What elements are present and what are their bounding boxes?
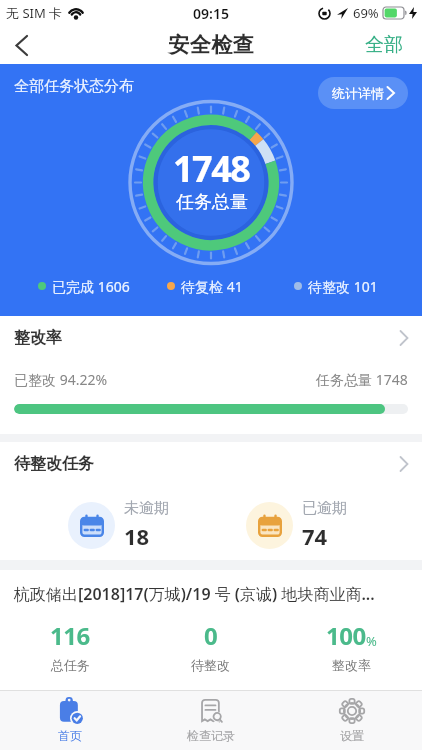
staticText: 待整改 101 <box>308 277 378 295</box>
staticText: 全部 <box>365 33 403 57</box>
staticText: 69% <box>353 4 379 22</box>
staticText: 已整改 94.22% <box>14 370 316 389</box>
button[interactable]: 整改率 <box>0 316 422 348</box>
button[interactable]: 已逾期 <box>246 499 347 551</box>
staticText: 设置 <box>340 728 364 743</box>
staticText: 已完成 1606 <box>52 277 130 295</box>
button[interactable]: 设置 <box>281 691 422 750</box>
button[interactable]: 检查记录 <box>140 691 281 750</box>
staticText: 待复检 41 <box>181 277 243 295</box>
button[interactable]: 待整改任务 <box>0 442 422 474</box>
staticText: 0 <box>204 619 218 652</box>
staticText: % <box>366 632 377 650</box>
staticText: 09:15 <box>193 4 229 23</box>
staticText: 任务总量 <box>176 191 248 214</box>
staticText: 首页 <box>58 728 82 743</box>
button[interactable]: 统计详情 <box>318 77 408 109</box>
staticText: 待整改 <box>191 657 230 673</box>
staticText: 100 <box>326 619 366 652</box>
staticText: 检查记录 <box>187 728 235 743</box>
staticText: 18 <box>124 521 150 551</box>
button[interactable]: 首页 <box>0 691 140 750</box>
staticText: 总任务 <box>51 657 90 673</box>
staticText: 安全检查 <box>168 32 254 58</box>
staticText: 杭政储出[2018]17(万城)/19 号 (京诚) 地块商业商... <box>14 583 375 605</box>
staticText: 1748 <box>173 144 250 193</box>
button[interactable]: 杭政储出[2018]17(万城)/19 号 (京诚) 地块商业商... <box>0 570 422 690</box>
staticText: 已逾期 <box>302 499 347 518</box>
button[interactable] <box>6 30 36 60</box>
staticText: 整改率 <box>14 328 400 348</box>
staticText: 待整改任务 <box>14 454 400 474</box>
staticText: 整改率 <box>332 657 371 673</box>
button[interactable]: 全部 <box>351 29 422 61</box>
staticText: 统计详情 <box>332 85 384 101</box>
staticText: 116 <box>50 619 90 652</box>
staticText: 全部任务状态分布 <box>14 77 134 96</box>
button[interactable]: 未逾期 <box>68 499 169 551</box>
staticText: 无 SIM 卡 <box>6 4 63 22</box>
staticText: 任务总量 1748 <box>316 370 408 389</box>
staticText: 74 <box>302 521 328 551</box>
staticText: 未逾期 <box>124 499 169 518</box>
